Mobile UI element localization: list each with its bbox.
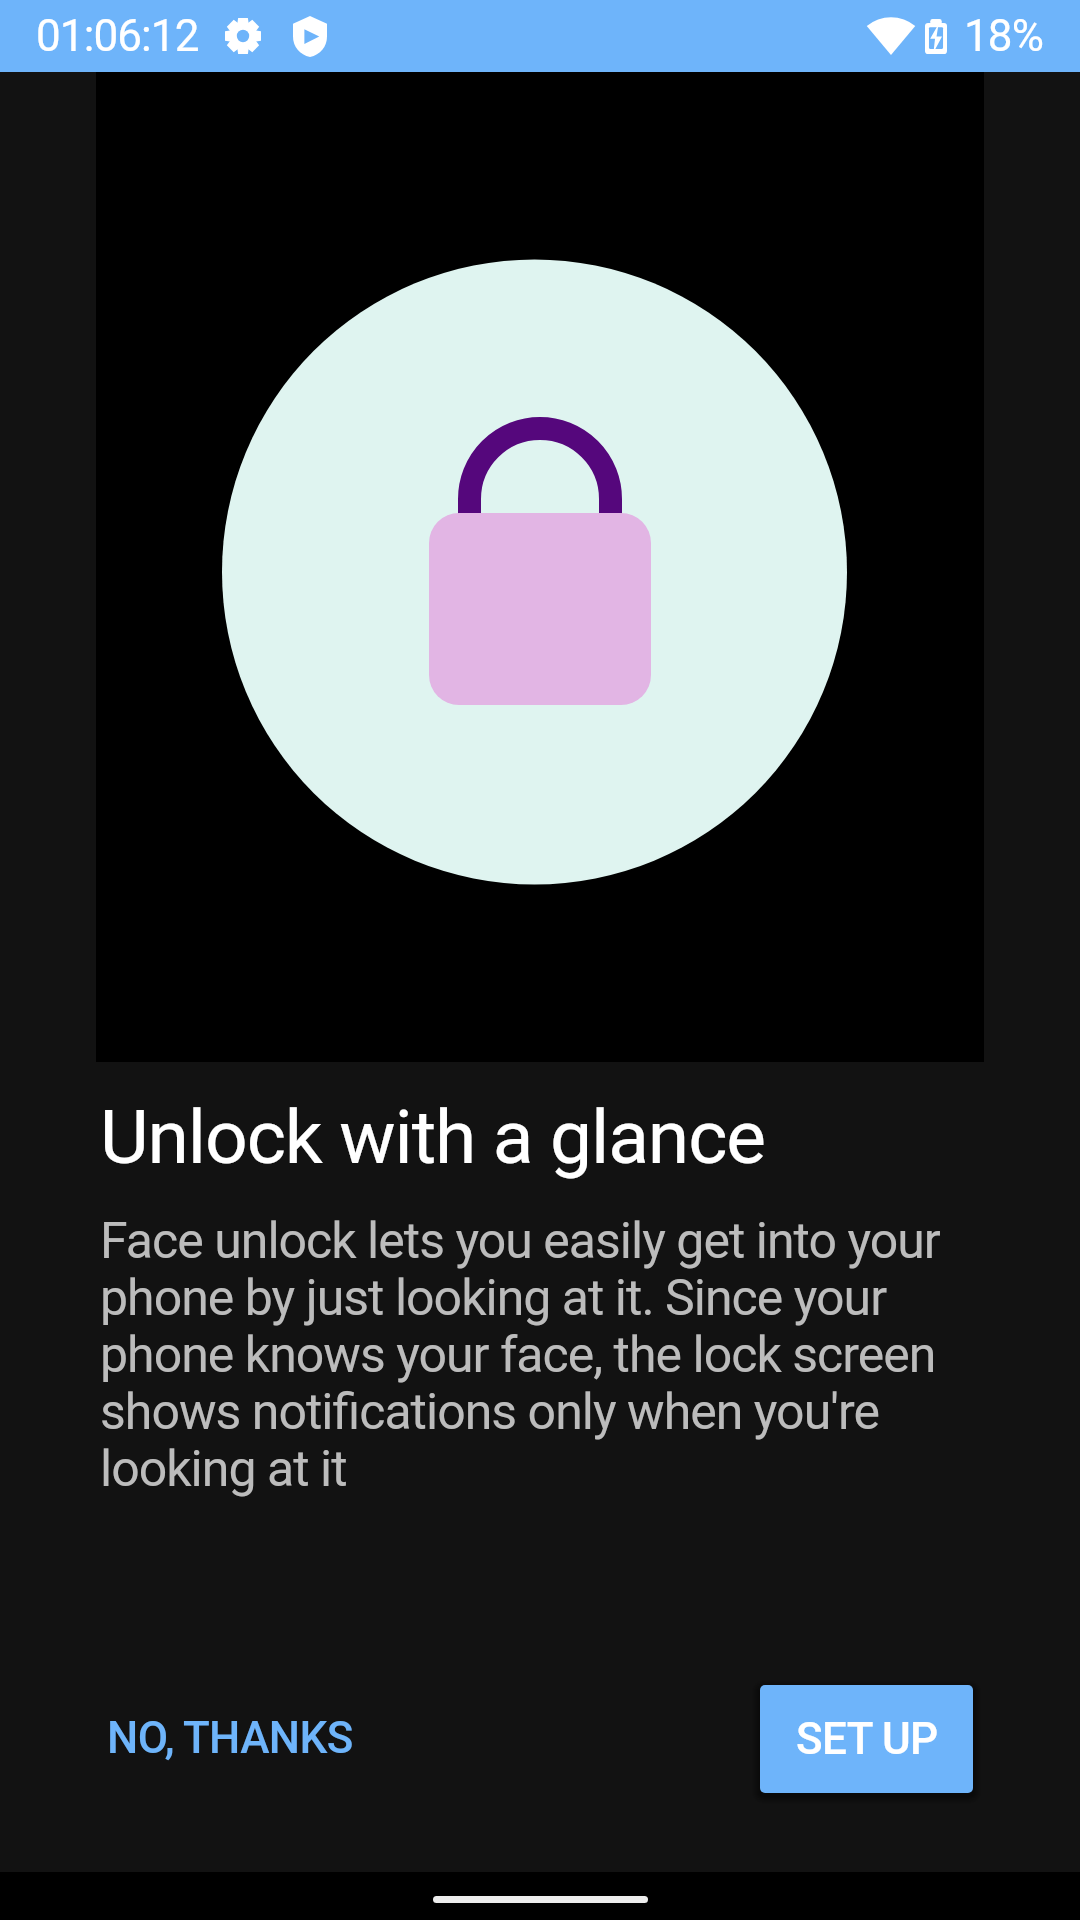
staticText: SET UP [796, 1713, 938, 1765]
other: Battery charging [925, 19, 947, 54]
other: Settings [225, 17, 261, 55]
staticText: NO, THANKS [107, 1712, 353, 1764]
staticText: 01:06:12 [36, 10, 199, 62]
button[interactable]: SET UP [760, 1685, 973, 1793]
staticText: 18% [964, 10, 1043, 62]
button[interactable]: NO, THANKS [93, 1686, 367, 1790]
staticText: Face unlock lets you easily get into you… [100, 1212, 980, 1498]
other: Wi-Fi [868, 18, 914, 55]
staticText: Unlock with a glance [100, 1093, 980, 1181]
other: Security [293, 16, 327, 57]
